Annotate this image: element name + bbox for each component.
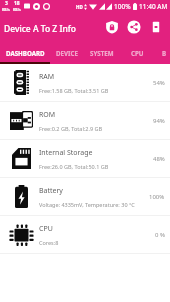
button[interactable]: CPU bbox=[122, 42, 153, 64]
button[interactable]: RAM bbox=[0, 64, 170, 101]
staticText: Free:0.2 GB, Total:2.9 GB bbox=[39, 125, 103, 132]
staticText: Free:26.0 GB, Total:50.1 GB bbox=[39, 163, 109, 170]
button[interactable]: BATTERY bbox=[153, 42, 170, 64]
staticText: KB/s bbox=[2, 7, 10, 12]
button[interactable]: DEVICE bbox=[51, 42, 84, 64]
staticText: Cores:8 bbox=[39, 239, 59, 246]
staticText: Battery bbox=[39, 186, 63, 196]
staticText: Internal Storage bbox=[39, 148, 93, 158]
staticText: Device A To Z Info bbox=[4, 23, 76, 35]
staticText: ROM bbox=[39, 110, 56, 120]
button[interactable]: Share bbox=[123, 15, 145, 39]
staticText: 100% bbox=[149, 193, 165, 201]
staticText: SYSTEM bbox=[90, 49, 114, 57]
staticText: 3 bbox=[5, 0, 8, 7]
staticText: KB/s bbox=[13, 7, 21, 12]
button[interactable]: Device bbox=[145, 15, 167, 39]
staticText: CPU bbox=[131, 49, 144, 57]
button[interactable]: SYSTEM bbox=[84, 42, 122, 64]
staticText: 54% bbox=[153, 79, 165, 87]
staticText: Voltage: 4335mV, Temperature: 30 °C bbox=[39, 201, 135, 208]
staticText: 0 % bbox=[155, 231, 165, 239]
button[interactable]: Internal Storage bbox=[0, 140, 170, 177]
staticText: 94% bbox=[153, 117, 165, 125]
button[interactable]: CPU bbox=[0, 216, 170, 253]
button[interactable]: ROM bbox=[0, 102, 170, 139]
staticText: 100% bbox=[114, 2, 131, 11]
button[interactable]: DASHBOARD bbox=[0, 42, 51, 64]
staticText: CPU bbox=[39, 224, 53, 234]
staticText: RAM bbox=[39, 72, 55, 82]
button[interactable]: Security scan bbox=[101, 15, 123, 39]
staticText: DEVICE bbox=[56, 49, 78, 57]
staticText: 11:40 AM bbox=[139, 2, 168, 11]
staticText: DASHBOARD bbox=[6, 49, 45, 57]
staticText: HD bbox=[76, 4, 83, 10]
staticText: 48% bbox=[153, 155, 165, 163]
staticText: Free:1.58 GB, Total:3.51 GB bbox=[39, 87, 109, 94]
button[interactable]: Battery bbox=[0, 178, 170, 215]
staticText: 18 bbox=[14, 0, 20, 7]
